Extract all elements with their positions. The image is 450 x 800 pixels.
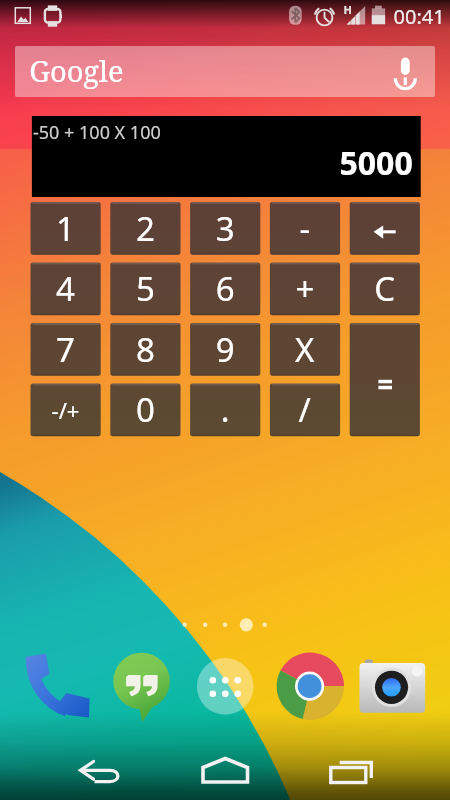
button[interactable]: 9	[190, 323, 260, 376]
button[interactable]: back	[350, 202, 420, 255]
button[interactable]: =	[350, 323, 420, 436]
button[interactable]: +	[270, 263, 340, 316]
button[interactable]: Back	[63, 750, 139, 796]
button[interactable]: X	[270, 323, 340, 376]
button[interactable]: 8	[110, 323, 180, 376]
button[interactable]: Chrome	[274, 650, 346, 722]
button[interactable]: 3	[190, 202, 260, 255]
button[interactable]: 4	[31, 263, 101, 316]
button[interactable]: .	[190, 384, 260, 437]
button[interactable]: 1	[31, 202, 101, 255]
button[interactable]: Apps	[190, 650, 262, 722]
button[interactable]: 6	[190, 263, 260, 316]
button[interactable]: Google search	[15, 46, 435, 97]
button[interactable]: -	[270, 202, 340, 255]
button[interactable]: Camera	[356, 658, 428, 718]
button[interactable]: 0	[110, 384, 180, 437]
button[interactable]: Recent apps	[314, 750, 390, 796]
button[interactable]: 5	[110, 263, 180, 316]
button[interactable]: 2	[110, 202, 180, 255]
button[interactable]: 7	[31, 323, 101, 376]
button[interactable]: Home	[187, 750, 263, 796]
button[interactable]: Phone	[20, 650, 96, 726]
button[interactable]: /	[270, 384, 340, 437]
button[interactable]: -/+	[31, 384, 101, 437]
button[interactable]: Hangouts	[106, 650, 182, 726]
button[interactable]: C	[350, 263, 420, 316]
